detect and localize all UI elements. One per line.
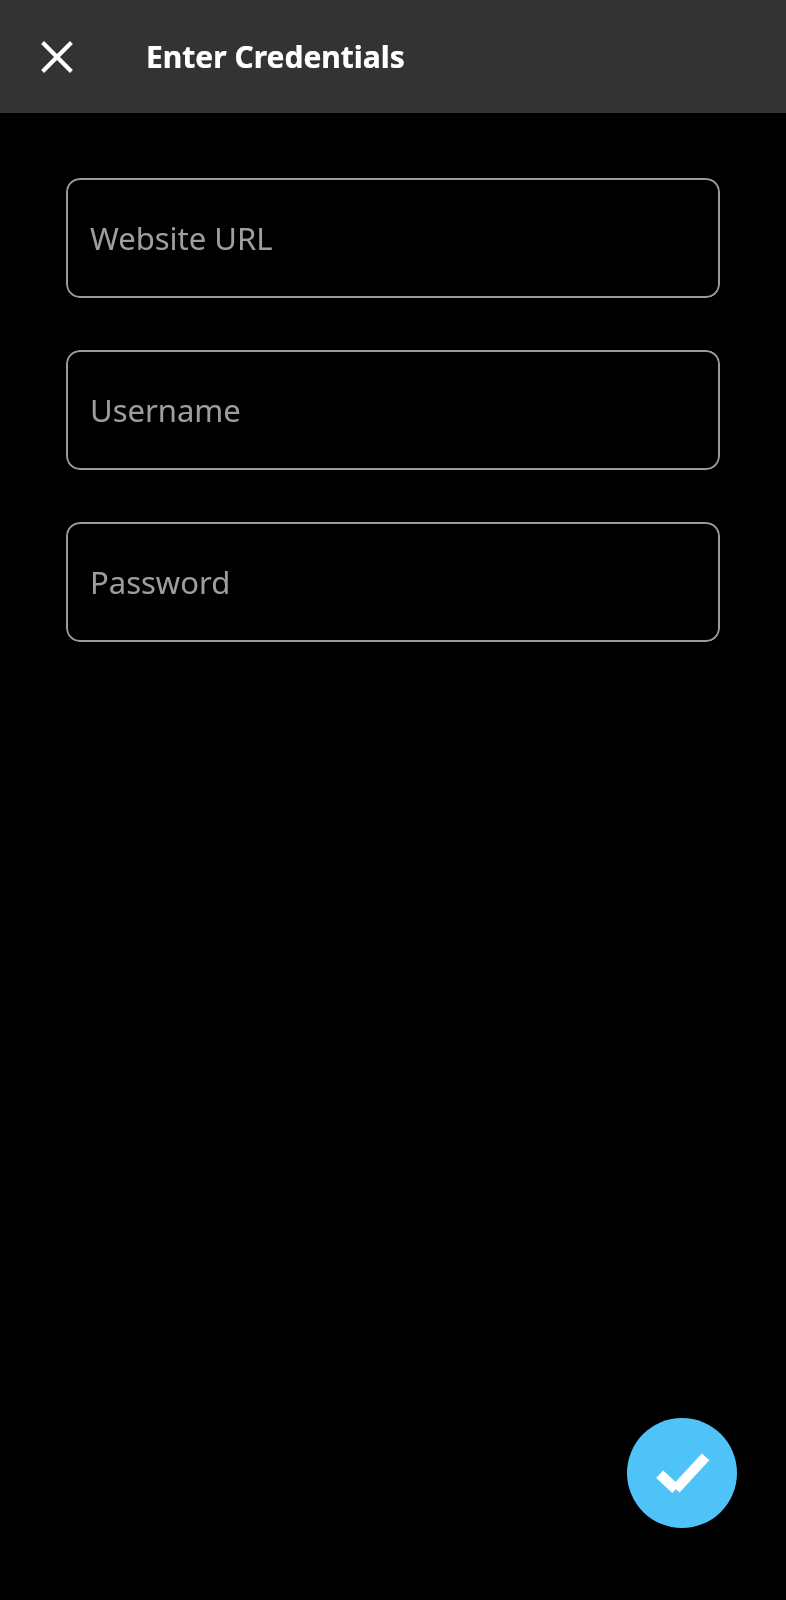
staticText: Website URL <box>90 217 273 259</box>
staticText: Enter Credentials <box>146 36 405 77</box>
button[interactable]: Website URL <box>66 178 720 298</box>
button[interactable]: Close <box>30 30 84 84</box>
button[interactable]: Password <box>66 522 720 642</box>
staticText: Username <box>90 389 241 431</box>
button[interactable]: Username <box>66 350 720 470</box>
button[interactable]: Save credentials <box>627 1418 737 1528</box>
staticText: Password <box>90 561 231 603</box>
